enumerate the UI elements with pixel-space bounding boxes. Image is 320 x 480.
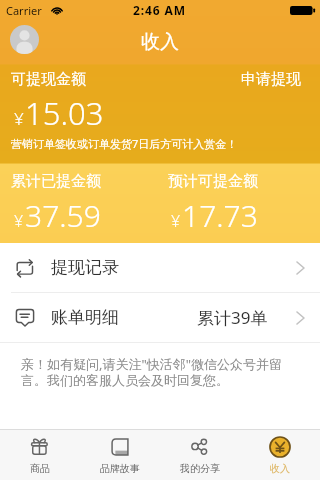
staticText: ¥: [14, 210, 24, 232]
staticText: 2:46 AM: [133, 2, 187, 18]
staticText: 提现记录: [51, 257, 119, 278]
staticText: 品牌故事: [100, 462, 140, 475]
staticText: ¥: [171, 210, 181, 232]
button[interactable]: 账单明细: [0, 293, 320, 342]
staticText: 收入: [141, 30, 179, 54]
staticText: 17.73: [182, 195, 258, 236]
staticText: 账单明细: [51, 307, 119, 328]
staticText: 营销订单签收或订单发货7日后方可计入赏金！: [11, 136, 238, 151]
button[interactable]: 品牌故事: [80, 430, 160, 480]
staticText: 37.59: [25, 195, 101, 236]
staticText: 我的分享: [180, 462, 220, 475]
staticText: 收入: [270, 462, 290, 475]
button[interactable]: 提现记录: [0, 243, 320, 292]
staticText: 亲！如有疑问,请关注"快活邻"微信公众号并留言。我们的客服人员会及时回复您。: [21, 355, 286, 389]
staticText: 15.03: [25, 92, 104, 134]
staticText: 申请提现: [241, 70, 301, 89]
button[interactable]: 收入: [240, 430, 320, 480]
staticText: Carrier: [6, 3, 42, 18]
staticText: 预计可提金额: [168, 172, 258, 191]
staticText: 累计已提金额: [11, 172, 101, 191]
button[interactable]: 我的分享: [160, 430, 240, 480]
button[interactable]: Profile: [10, 25, 39, 54]
staticText: 可提现金额: [11, 70, 86, 89]
staticText: 累计39单: [197, 306, 268, 329]
staticText: 商品: [30, 462, 50, 475]
button[interactable]: 商品: [0, 430, 80, 480]
staticText: ¥: [14, 107, 24, 130]
button[interactable]: 申请提现: [241, 70, 301, 89]
